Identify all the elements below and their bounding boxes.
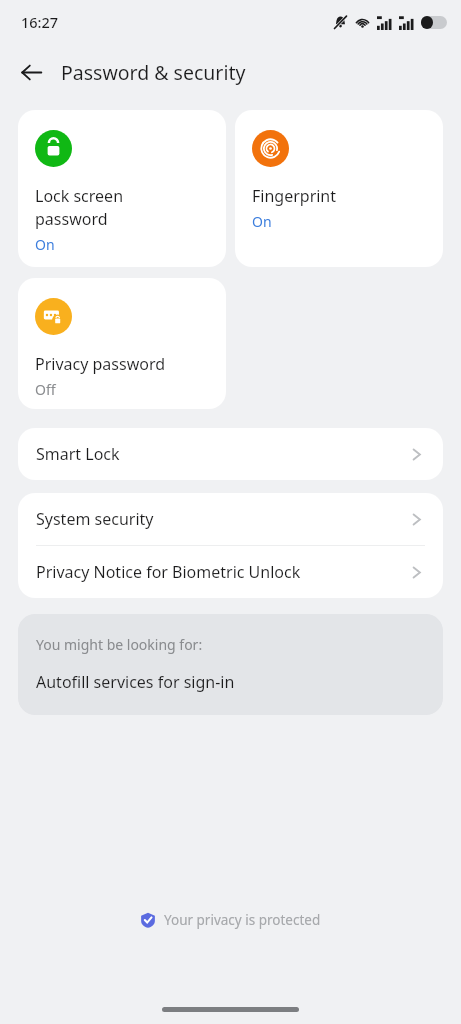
staticText: On — [252, 212, 272, 231]
staticText: Fingerprint — [252, 185, 337, 207]
button[interactable]: System security — [18, 493, 443, 545]
staticText: System security — [36, 508, 408, 530]
button[interactable]: Privacy password — [18, 278, 226, 409]
button[interactable]: Back — [10, 51, 52, 93]
staticText: On — [35, 235, 55, 254]
staticText: Password & security — [61, 59, 246, 86]
staticText: You might be looking for: — [36, 635, 203, 654]
staticText: Privacy Notice for Biometric Unlock — [36, 561, 408, 583]
staticText: Lock screen password — [35, 185, 124, 230]
staticText: 16:27 — [21, 12, 59, 32]
staticText: Privacy password — [35, 353, 166, 375]
staticText: Autofill services for sign-in — [36, 671, 235, 693]
button[interactable]: Smart Lock — [18, 428, 443, 480]
button[interactable]: Fingerprint — [235, 110, 443, 267]
staticText: Off — [35, 380, 56, 399]
staticText: Your privacy is protected — [164, 911, 321, 929]
button[interactable]: Lock screen password — [18, 110, 226, 267]
button[interactable]: You might be looking for: — [18, 614, 443, 715]
button[interactable]: Privacy Notice for Biometric Unlock — [18, 546, 443, 598]
staticText: Smart Lock — [36, 443, 408, 465]
